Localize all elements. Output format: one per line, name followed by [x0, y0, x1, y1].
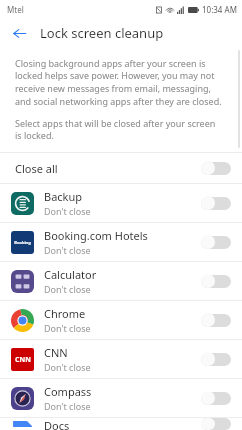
staticText: Booking [14, 240, 31, 245]
staticText: Don't close [44, 205, 91, 217]
staticText: Booking.com Hotels [44, 228, 148, 243]
staticText: Lock screen cleanup [40, 24, 164, 42]
staticText: Select apps that will be closed after yo… [15, 117, 224, 142]
staticText: Don't close [44, 283, 91, 295]
staticText: Compass [44, 384, 92, 399]
staticText: CNN [44, 345, 68, 360]
button[interactable]: Close all [0, 153, 242, 183]
button[interactable]: Backup [0, 184, 242, 222]
staticText: Don't close [44, 322, 91, 334]
staticText: 10:34 AM [202, 4, 237, 15]
staticText: Backup [44, 189, 83, 204]
button[interactable]: Calculator [0, 262, 242, 300]
button[interactable]: CNN [0, 340, 242, 378]
button[interactable]: Compass [0, 379, 242, 417]
staticText: Docs [44, 418, 70, 430]
staticText: Chrome [44, 306, 86, 321]
staticText: Mtel [7, 4, 24, 15]
staticText: Calculator [44, 267, 97, 282]
staticText: CNN [15, 355, 31, 365]
button[interactable]: Booking [0, 223, 242, 261]
button[interactable]: Chrome [0, 301, 242, 339]
staticText: Don't close [44, 400, 91, 412]
staticText: Don't close [44, 244, 91, 256]
staticText: Closing background apps after your scree… [15, 57, 224, 108]
button[interactable]: Docs [0, 418, 242, 430]
staticText: Don't close [44, 361, 91, 373]
staticText: Close all [15, 161, 201, 176]
button[interactable]: Back [6, 20, 32, 46]
